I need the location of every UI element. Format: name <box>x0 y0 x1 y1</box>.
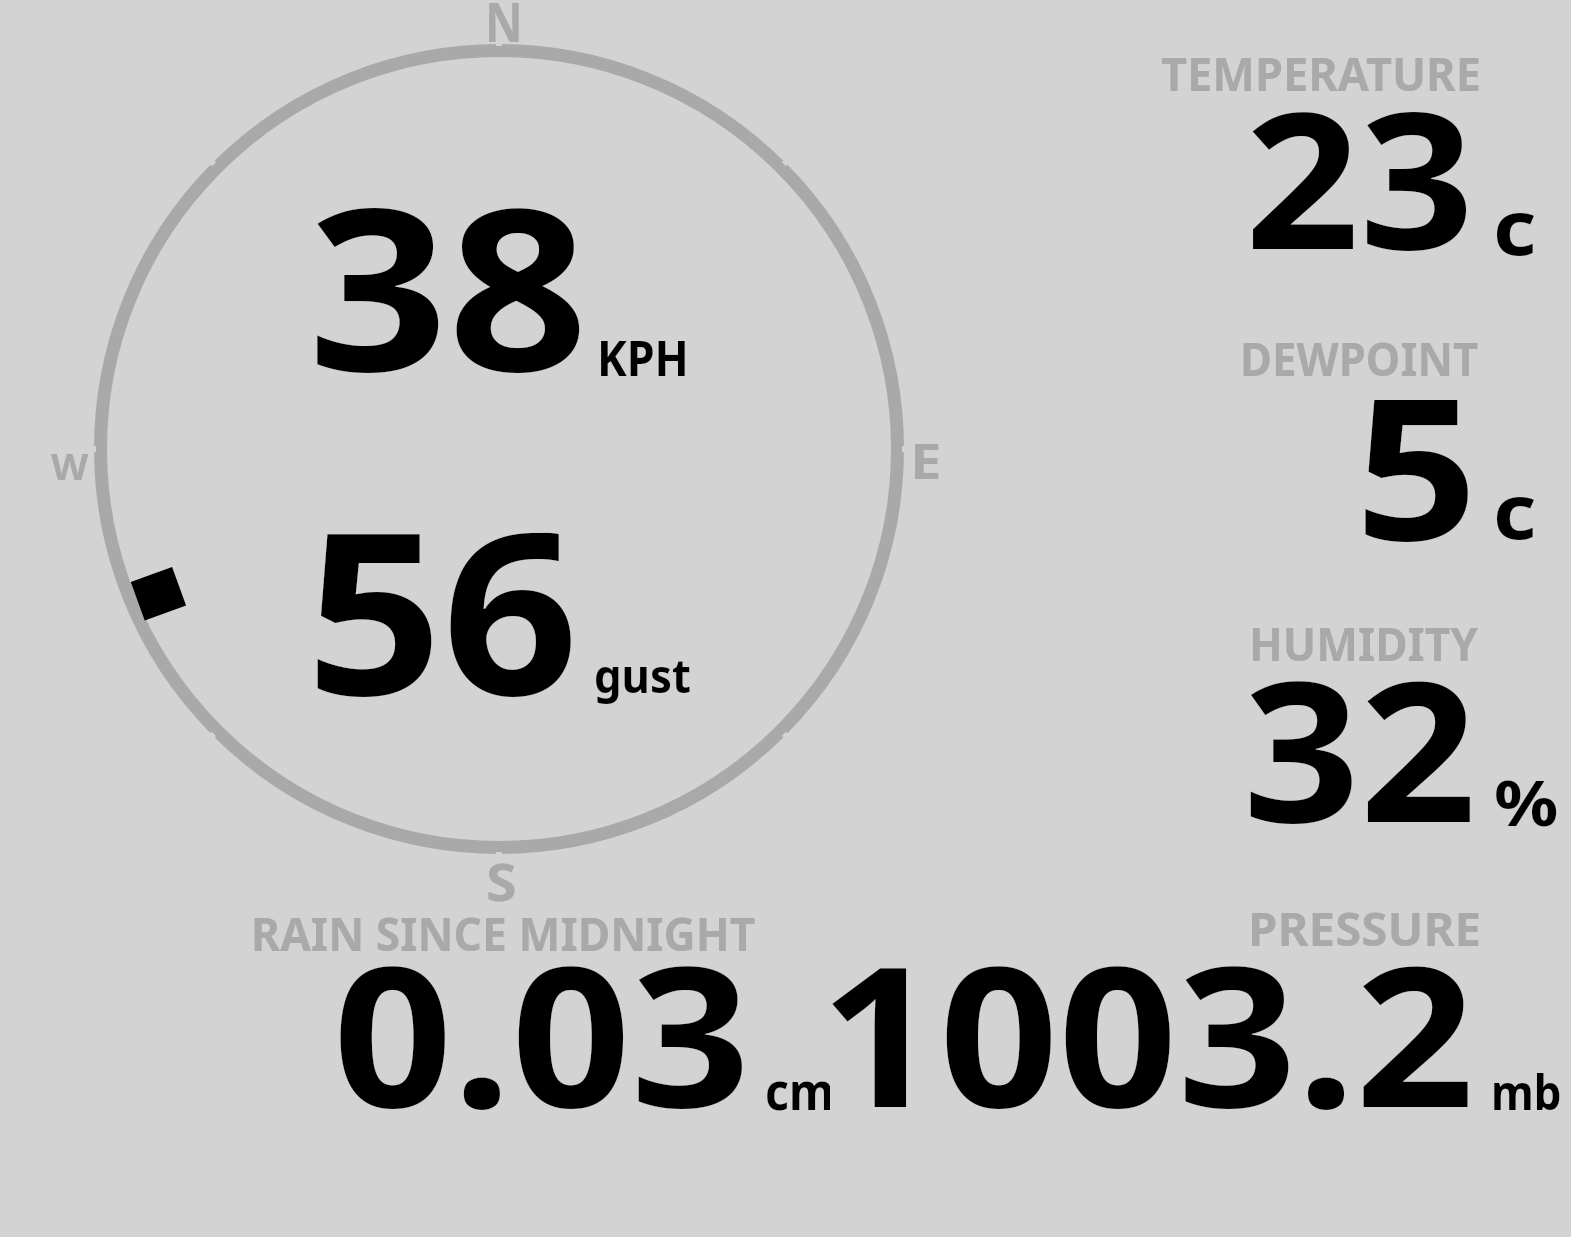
staticText: 5 <box>1355 332 1478 598</box>
staticText: HUMIDITY <box>1249 612 1479 675</box>
staticText: 1003.2 <box>820 900 1475 1164</box>
staticText: DEWPOINT <box>1240 327 1478 390</box>
button[interactable]: Humidity 32 percent <box>1140 620 1560 830</box>
button[interactable]: Wind gust 56 <box>280 515 700 715</box>
button[interactable]: Dewpoint 5 degrees C <box>1140 335 1560 545</box>
staticText: c <box>1493 459 1537 561</box>
staticText: N <box>485 0 523 58</box>
other: Wind direction compass dial <box>0 0 1571 1237</box>
staticText: 23 <box>1245 48 1475 304</box>
staticText: gust <box>594 644 692 707</box>
button[interactable]: Wind speed 38 KPH <box>280 190 700 390</box>
staticText: E <box>910 427 942 494</box>
staticText: c <box>1493 175 1537 277</box>
staticText: KPH <box>597 325 689 390</box>
staticText: 56 <box>306 456 579 761</box>
button[interactable]: Rain since midnight 0.03 cm <box>250 910 840 1115</box>
staticText: mb <box>1491 1058 1562 1125</box>
staticText: TEMPERATURE <box>1161 42 1482 105</box>
staticText: S <box>486 845 517 916</box>
staticText: W <box>51 442 88 491</box>
staticText: cm <box>765 1057 834 1125</box>
staticText: 38 <box>308 130 589 436</box>
staticText: RAIN SINCE MIDNIGHT <box>251 902 756 965</box>
button[interactable]: Pressure 1003.2 millibars <box>830 910 1560 1115</box>
staticText: 32 <box>1243 615 1477 879</box>
staticText: % <box>1494 759 1558 845</box>
button[interactable]: Temperature 23 degrees C <box>1140 50 1560 260</box>
staticText: 0.03 <box>333 900 751 1164</box>
staticText: PRESSURE <box>1248 897 1481 960</box>
